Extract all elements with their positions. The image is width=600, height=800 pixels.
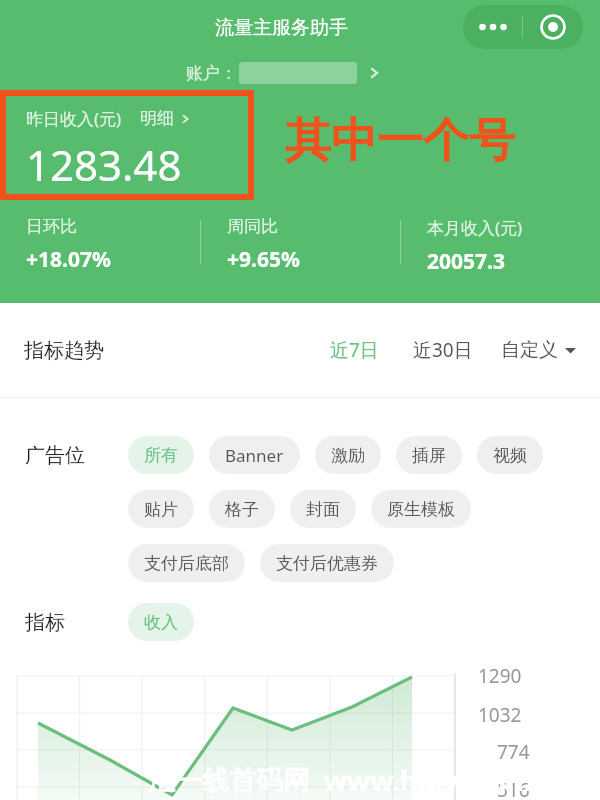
- staticText: 汇一线首码网: [148, 764, 310, 798]
- staticText: 贴片: [144, 499, 178, 520]
- button[interactable]: 自定义: [501, 338, 576, 362]
- staticText: 账户：: [186, 63, 237, 84]
- button[interactable]: 支付后底部: [128, 544, 245, 582]
- staticText: 1032: [478, 702, 522, 728]
- button[interactable]: 近7日: [324, 337, 385, 363]
- staticText: Banner: [225, 444, 284, 467]
- staticText: 近30日: [413, 337, 473, 363]
- button[interactable]: 激励: [315, 436, 381, 474]
- button[interactable]: More options and close: [463, 5, 583, 49]
- staticText: 近7日: [330, 337, 379, 363]
- staticText: 明细: [140, 108, 174, 129]
- button[interactable]: 所有: [128, 436, 194, 474]
- staticText: 本月收入(元): [427, 216, 523, 239]
- staticText: +9.65%: [227, 245, 300, 274]
- staticText: 774: [497, 739, 530, 765]
- button[interactable]: 收入: [128, 603, 194, 641]
- staticText: 支付后底部: [144, 553, 229, 574]
- button[interactable]: 视频: [477, 436, 543, 474]
- staticText: +18.07%: [26, 245, 111, 274]
- staticText: 视频: [493, 445, 527, 466]
- staticText: 1283.48: [26, 136, 182, 193]
- button[interactable]: 账户：: [186, 62, 381, 84]
- staticText: 插屏: [412, 445, 446, 466]
- button[interactable]: 昨日收入(元): [26, 107, 191, 193]
- button[interactable]: 原生模板: [371, 490, 471, 528]
- staticText: 周同比: [227, 216, 278, 237]
- staticText: 指标趋势: [24, 338, 104, 363]
- button[interactable]: 支付后优惠券: [260, 544, 394, 582]
- button[interactable]: Banner: [209, 436, 300, 474]
- staticText: 流量主服务助手: [215, 16, 348, 40]
- staticText: 昨日收入(元): [26, 107, 122, 130]
- staticText: 激励: [331, 445, 365, 466]
- staticText: 自定义: [501, 338, 558, 362]
- staticText: www.huiyixian.com: [324, 762, 589, 799]
- staticText: 原生模板: [387, 499, 455, 520]
- staticText: 封面: [306, 499, 340, 520]
- button[interactable]: 封面: [290, 490, 356, 528]
- staticText: 指标: [25, 610, 65, 635]
- staticText: 其中一个号: [285, 112, 515, 170]
- button[interactable]: 近30日: [407, 337, 479, 363]
- staticText: 日环比: [26, 216, 77, 237]
- staticText: 1290: [478, 663, 522, 689]
- staticText: 收入: [144, 612, 178, 633]
- button[interactable]: 贴片: [128, 490, 194, 528]
- staticText: 广告位: [25, 443, 85, 468]
- staticText: 所有: [144, 445, 178, 466]
- staticText: 20057.3: [427, 247, 505, 276]
- button[interactable]: 格子: [209, 490, 275, 528]
- staticText: 516: [497, 777, 530, 800]
- button[interactable]: 插屏: [396, 436, 462, 474]
- staticText: 支付后优惠券: [276, 553, 378, 574]
- staticText: 格子: [225, 499, 259, 520]
